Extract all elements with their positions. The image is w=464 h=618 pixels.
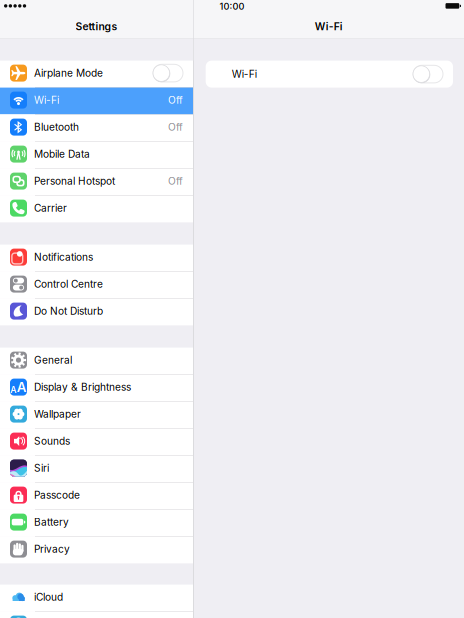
staticText: Do Not Disturb [34, 305, 103, 317]
staticText: Wi-Fi [232, 68, 257, 80]
staticText: Wi-Fi [34, 94, 59, 106]
button[interactable]: Do Not Disturb [0, 299, 193, 326]
button[interactable]: Bluetooth [0, 115, 193, 142]
button[interactable]: Control Centre [0, 272, 193, 299]
button[interactable]: Wallpaper [0, 402, 193, 429]
button[interactable]: Privacy [0, 537, 193, 564]
staticText: A [17, 379, 27, 395]
button[interactable]: Carrier [0, 196, 193, 223]
staticText: Mobile Data [34, 148, 90, 160]
button[interactable]: Personal Hotspot [0, 169, 193, 196]
staticText: Wallpaper [34, 408, 81, 420]
button[interactable]: iCloud [0, 585, 193, 612]
button[interactable]: Wi-Fi [0, 88, 193, 115]
button[interactable]: Mobile Data [0, 142, 193, 169]
staticText: Passcode [34, 489, 80, 501]
staticText: 10:00 [219, 1, 244, 12]
button[interactable]: Wi-Fi [206, 61, 453, 88]
staticText: Wi-Fi [315, 20, 343, 33]
staticText: Notifications [34, 251, 93, 263]
staticText: Carrier [34, 202, 67, 214]
staticText: A [10, 385, 16, 395]
staticText: Off [168, 175, 183, 187]
button[interactable]: iTunes & App Store [0, 612, 193, 618]
staticText: Personal Hotspot [34, 175, 115, 187]
staticText: Siri [34, 462, 49, 474]
button[interactable]: Siri [0, 456, 193, 483]
staticText: iCloud [34, 591, 63, 603]
button[interactable]: General [0, 348, 193, 375]
staticText: Control Centre [34, 278, 103, 290]
staticText: Sounds [34, 435, 70, 447]
staticText: Airplane Mode [34, 67, 103, 79]
button[interactable]: A [0, 375, 193, 402]
staticText: Off [168, 94, 183, 106]
staticText: Bluetooth [34, 121, 79, 133]
staticText: Settings [75, 20, 117, 33]
staticText: General [34, 354, 72, 366]
button[interactable]: Sounds [0, 429, 193, 456]
button[interactable]: Notifications [0, 245, 193, 272]
staticText: Battery [34, 516, 69, 528]
button[interactable]: Passcode [0, 483, 193, 510]
button[interactable]: Battery [0, 510, 193, 537]
staticText: Off [168, 121, 183, 133]
staticText: Privacy [34, 543, 70, 555]
staticText: Display & Brightness [34, 381, 131, 393]
button[interactable]: Airplane Mode [0, 61, 193, 88]
